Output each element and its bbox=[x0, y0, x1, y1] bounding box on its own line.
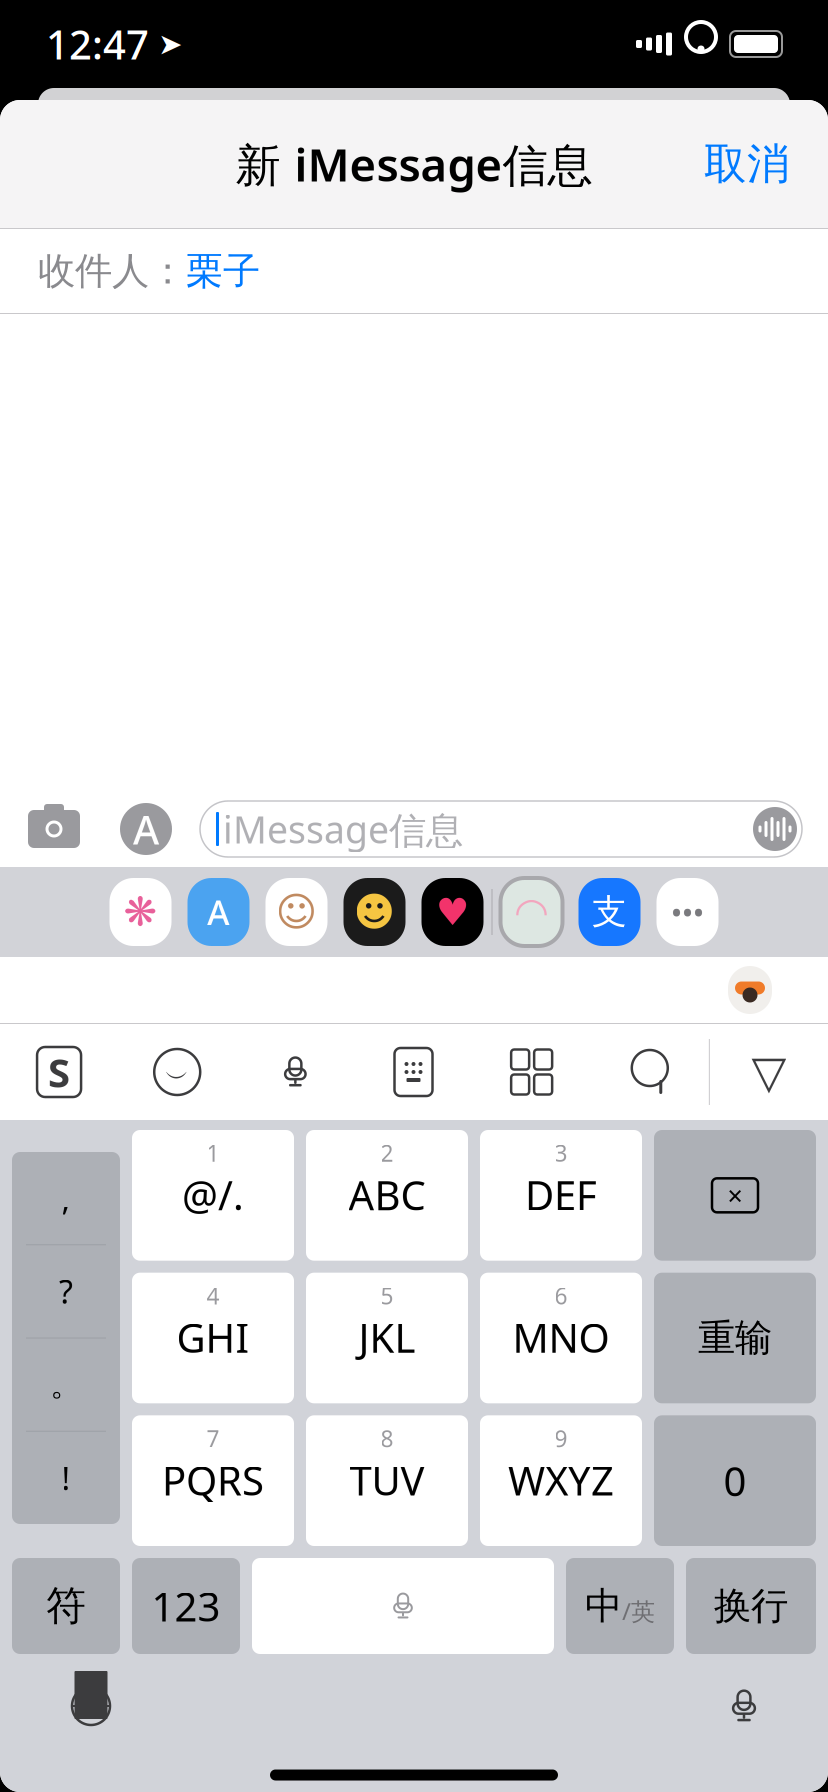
staticText: JKL bbox=[358, 1311, 415, 1364]
staticText: ♥ bbox=[436, 891, 469, 933]
staticText: ABC bbox=[348, 1168, 425, 1221]
staticText: WXYZ bbox=[508, 1453, 614, 1506]
staticText: 符 bbox=[46, 1581, 86, 1630]
staticText: ︶ bbox=[165, 1063, 189, 1093]
staticText: ◠ bbox=[514, 889, 549, 935]
staticText: ❋ bbox=[123, 889, 157, 935]
button[interactable]: 重输 bbox=[654, 1273, 816, 1403]
staticText: @/. bbox=[182, 1168, 244, 1221]
button[interactable]: App bbox=[101, 875, 179, 949]
staticText: 2 bbox=[380, 1138, 393, 1168]
button[interactable]: , bbox=[12, 1152, 120, 1244]
button[interactable]: 123 bbox=[132, 1558, 240, 1654]
staticText: S bbox=[48, 1045, 70, 1098]
button[interactable]: Hide keyboard bbox=[710, 1046, 828, 1098]
button[interactable]: Dictation bbox=[728, 1686, 760, 1726]
staticText: A bbox=[207, 889, 230, 935]
button[interactable]: 4 bbox=[132, 1273, 294, 1403]
button[interactable]: 收件人： bbox=[0, 229, 828, 313]
staticText: 换行 bbox=[714, 1583, 788, 1629]
button[interactable]: Camera bbox=[26, 806, 82, 852]
button[interactable]: 1 bbox=[132, 1130, 294, 1261]
button[interactable]: App bbox=[570, 875, 648, 949]
staticText: DEF bbox=[525, 1168, 597, 1221]
button[interactable]: 中 bbox=[566, 1558, 674, 1654]
button[interactable]: Voice bbox=[252, 1558, 554, 1654]
button[interactable]: 。 bbox=[12, 1338, 120, 1431]
button[interactable]: Voice input bbox=[236, 1053, 354, 1091]
button[interactable]: 9 bbox=[480, 1415, 642, 1546]
button[interactable]: Sticker suggestion bbox=[728, 966, 772, 1014]
button[interactable]: Keyboard layout bbox=[354, 1048, 472, 1096]
staticText: 1 bbox=[206, 1138, 219, 1168]
button[interactable]: 3 bbox=[480, 1130, 642, 1261]
staticText: 5 bbox=[380, 1281, 393, 1311]
button[interactable]: App bbox=[335, 875, 413, 949]
staticText: 取消 bbox=[704, 138, 790, 190]
button[interactable]: More functions bbox=[473, 1049, 591, 1094]
staticText: 0 bbox=[723, 1454, 746, 1507]
button[interactable]: 7 bbox=[132, 1415, 294, 1546]
staticText: A bbox=[133, 802, 159, 855]
staticText: 支 bbox=[592, 891, 627, 933]
staticText: ☻ bbox=[353, 889, 395, 935]
staticText: MNO bbox=[512, 1311, 609, 1364]
button[interactable]: Sogou input bbox=[0, 1045, 118, 1098]
staticText: 8 bbox=[380, 1423, 393, 1453]
button[interactable]: 换行 bbox=[686, 1558, 816, 1654]
button[interactable]: 8 bbox=[306, 1415, 468, 1546]
button[interactable]: 2 bbox=[306, 1130, 468, 1261]
staticText: 栗子 bbox=[186, 248, 260, 294]
button[interactable]: App bbox=[648, 875, 726, 949]
staticText: 12:47 bbox=[46, 17, 149, 70]
button[interactable]: App bbox=[179, 875, 257, 949]
button[interactable]: Search bbox=[591, 1047, 709, 1097]
staticText: 123 bbox=[151, 1579, 220, 1632]
staticText: 中 bbox=[585, 1583, 622, 1629]
staticText: 7 bbox=[206, 1423, 219, 1453]
button[interactable]: Audio message bbox=[753, 807, 797, 851]
staticText: ☺︎ bbox=[275, 889, 317, 935]
staticText: 新 iMessage信息 bbox=[235, 134, 592, 194]
staticText: × bbox=[727, 1178, 742, 1213]
staticText: 收件人： bbox=[38, 248, 186, 294]
button[interactable]: 取消 bbox=[690, 128, 804, 200]
staticText: 4 bbox=[206, 1281, 219, 1311]
staticText: ➤ bbox=[149, 27, 183, 61]
staticText: ••• bbox=[671, 892, 704, 931]
button[interactable]: App bbox=[492, 875, 570, 949]
button[interactable]: 符 bbox=[12, 1558, 120, 1654]
button[interactable]: Switch keyboard bbox=[68, 1681, 114, 1731]
staticText: GHI bbox=[176, 1311, 249, 1364]
staticText: ▽ bbox=[751, 1046, 786, 1098]
button[interactable]: 5 bbox=[306, 1273, 468, 1403]
staticText: 3 bbox=[554, 1138, 567, 1168]
button[interactable]: Emoji bbox=[118, 1046, 236, 1098]
staticText: ? bbox=[59, 1270, 73, 1313]
button[interactable]: Delete bbox=[654, 1130, 816, 1261]
button[interactable]: ? bbox=[12, 1245, 120, 1337]
staticText: 重输 bbox=[698, 1315, 772, 1361]
button[interactable]: ! bbox=[12, 1432, 120, 1524]
staticText: /英 bbox=[622, 1595, 655, 1627]
button[interactable]: App Store bbox=[120, 802, 172, 855]
staticText: 9 bbox=[554, 1423, 567, 1453]
staticText: 。 bbox=[50, 1365, 82, 1404]
staticText: ! bbox=[61, 1457, 70, 1499]
button[interactable]: 0 bbox=[654, 1415, 816, 1546]
button[interactable]: App bbox=[413, 875, 491, 949]
staticText: , bbox=[61, 1177, 70, 1219]
staticText: TUV bbox=[349, 1453, 424, 1506]
button[interactable]: 6 bbox=[480, 1273, 642, 1403]
button[interactable]: App bbox=[257, 875, 335, 949]
staticText: 6 bbox=[554, 1281, 567, 1311]
staticText: iMessage信息 bbox=[223, 804, 463, 854]
staticText: PQRS bbox=[162, 1453, 264, 1506]
